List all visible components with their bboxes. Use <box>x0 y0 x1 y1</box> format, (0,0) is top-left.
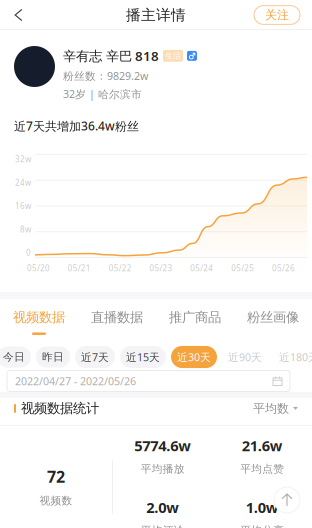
staticText: 近180天 <box>279 350 312 364</box>
staticText: 32w <box>15 154 31 164</box>
button[interactable]: 粉丝画像 <box>234 309 312 335</box>
staticText: 05/22 <box>109 263 132 273</box>
button[interactable]: Back to top <box>274 486 300 514</box>
staticText: 24w <box>15 177 31 188</box>
button[interactable]: 近180天 <box>273 346 312 368</box>
staticText: 平均播放 <box>141 462 185 475</box>
staticText: 视频数据 <box>13 309 65 325</box>
staticText: 21.6w <box>242 436 283 455</box>
staticText: 32岁 | 哈尔滨市 <box>63 87 142 101</box>
button[interactable]: 近7天 <box>75 346 115 368</box>
staticText: 平均数 <box>253 401 289 416</box>
staticText: 平均分享 <box>240 524 284 528</box>
button[interactable]: 关注 <box>254 1 312 29</box>
staticText: 视频数 <box>39 494 72 507</box>
staticText: 近90天 <box>228 350 262 364</box>
staticText: 粉丝数：9829.2w <box>63 69 148 83</box>
staticText: 05/20 <box>27 263 50 273</box>
staticText: 05/23 <box>149 263 172 273</box>
staticText: 05/25 <box>231 263 254 273</box>
staticText: 近30天 <box>177 350 211 364</box>
staticText: 播主详情 <box>126 6 186 24</box>
staticText: 近15天 <box>126 350 160 364</box>
staticText: 平均点赞 <box>240 462 284 475</box>
button[interactable]: 2022/04/27 - 2022/05/26 <box>7 370 290 391</box>
staticText: 16w <box>15 201 31 211</box>
staticText: 05/24 <box>190 263 213 273</box>
staticText: 8w <box>20 224 31 235</box>
staticText: 05/21 <box>68 263 91 273</box>
staticText: 关注 <box>265 8 289 22</box>
button[interactable]: 近30天 <box>171 346 217 368</box>
button[interactable]: 视频数据 <box>0 309 78 335</box>
staticText: 直播数据 <box>91 309 143 325</box>
staticText: 0 <box>26 247 31 258</box>
staticText: 视频数据统计 <box>21 400 99 417</box>
button[interactable]: 平均数 <box>253 401 312 416</box>
staticText: 72 <box>47 466 65 487</box>
staticText: 5774.6w <box>134 436 191 455</box>
staticText: 辛有志 辛巴 818 <box>63 47 159 65</box>
button[interactable]: 今日 <box>0 346 31 367</box>
button[interactable]: 昨日 <box>36 346 70 367</box>
staticText: 昨日 <box>42 350 64 363</box>
staticText: 1.0w <box>246 497 279 517</box>
button[interactable]: Back <box>0 0 33 30</box>
button[interactable]: 近15天 <box>120 346 166 368</box>
staticText: 近7天共增加36.4w粉丝 <box>14 118 139 134</box>
staticText: 今日 <box>3 350 25 363</box>
staticText: 生活 <box>165 51 181 61</box>
button[interactable]: 近90天 <box>222 346 268 368</box>
button[interactable]: 直播数据 <box>78 309 156 335</box>
staticText: 2.0w <box>146 497 179 517</box>
staticText: 近7天 <box>81 350 109 364</box>
button[interactable]: 推广商品 <box>156 309 234 335</box>
staticText: 2022/04/27 - 2022/05/26 <box>15 374 136 388</box>
staticText: 粉丝画像 <box>247 309 299 325</box>
staticText: 平均评论 <box>141 524 185 528</box>
staticText: 05/26 <box>272 263 295 273</box>
staticText: 推广商品 <box>169 309 221 325</box>
